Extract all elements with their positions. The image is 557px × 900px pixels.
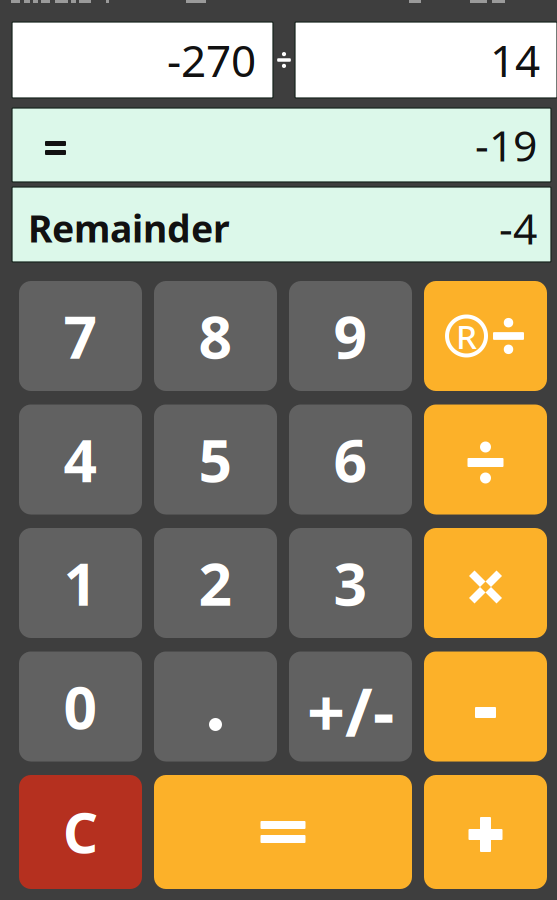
- button[interactable]: [289, 528, 412, 638]
- button[interactable]: [154, 528, 277, 638]
- staticText: 2: [198, 544, 232, 622]
- button[interactable]: [289, 404, 412, 514]
- staticText: 7: [63, 297, 97, 375]
- staticText: 8: [198, 297, 232, 375]
- staticText: 14: [490, 31, 540, 89]
- button[interactable]: Equals: [154, 775, 412, 889]
- button[interactable]: Minus: [424, 651, 547, 761]
- staticText: -270: [167, 31, 256, 89]
- staticText: 1: [63, 544, 97, 622]
- staticText: 4: [63, 420, 97, 498]
- button[interactable]: Plus: [424, 775, 547, 889]
- staticText: +/-: [307, 667, 394, 755]
- button[interactable]: [19, 775, 142, 889]
- staticText: -4: [499, 200, 537, 256]
- button[interactable]: [289, 651, 412, 761]
- button[interactable]: Multiply: [424, 528, 547, 638]
- staticText: 9: [333, 297, 367, 375]
- button[interactable]: [154, 281, 277, 391]
- staticText: 0: [63, 667, 97, 745]
- staticText: -19: [475, 117, 537, 173]
- button[interactable]: [19, 404, 142, 514]
- button[interactable]: Divide: [424, 404, 547, 514]
- staticText: 5: [198, 420, 232, 498]
- button[interactable]: [19, 281, 142, 391]
- button[interactable]: Decimal point: [154, 651, 277, 761]
- staticText: Remainder: [28, 203, 230, 253]
- button[interactable]: [19, 528, 142, 638]
- button[interactable]: [154, 404, 277, 514]
- button[interactable]: [289, 281, 412, 391]
- button[interactable]: Remainder divide: [424, 281, 547, 391]
- staticText: C: [63, 796, 98, 868]
- button[interactable]: [19, 651, 142, 761]
- staticText: 6: [333, 420, 367, 498]
- staticText: R: [456, 314, 477, 358]
- staticText: 3: [333, 544, 367, 622]
